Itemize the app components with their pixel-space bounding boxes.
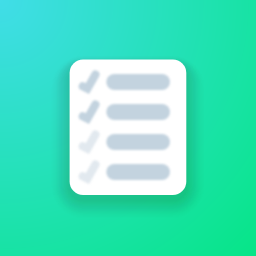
button[interactable]: Checklist [0,0,256,256]
